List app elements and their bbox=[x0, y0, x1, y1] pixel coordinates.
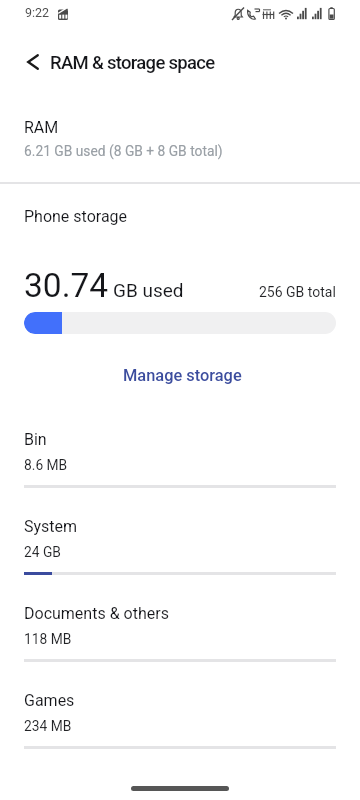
staticText: 234 MB bbox=[24, 718, 72, 734]
staticText: 256 GB total bbox=[259, 284, 336, 300]
staticText: 24 GB bbox=[24, 544, 61, 560]
staticText: Documents & others bbox=[24, 604, 169, 623]
staticText: Phone storage bbox=[24, 207, 128, 226]
staticText: 30.74 bbox=[24, 266, 109, 305]
staticText: 9:22 bbox=[25, 5, 50, 20]
button[interactable]: System bbox=[0, 506, 360, 593]
staticText: System bbox=[24, 517, 78, 536]
button[interactable]: RAM bbox=[0, 106, 360, 179]
staticText: RAM bbox=[24, 118, 59, 137]
button[interactable]: Manage storage bbox=[2, 356, 360, 394]
button[interactable]: Bin bbox=[0, 419, 360, 506]
staticText: GB used bbox=[113, 279, 184, 301]
staticText: Games bbox=[24, 691, 75, 710]
staticText: 118 MB bbox=[24, 631, 72, 647]
button[interactable]: Back bbox=[9, 38, 57, 86]
staticText: RAM & storage space bbox=[50, 52, 215, 74]
button[interactable]: Documents & others bbox=[0, 593, 360, 680]
button[interactable]: Games bbox=[0, 680, 360, 767]
staticText: Bin bbox=[24, 430, 47, 449]
staticText: 6.21 GB used (8 GB + 8 GB total) bbox=[24, 143, 223, 159]
staticText: Manage storage bbox=[123, 366, 242, 385]
staticText: 8.6 MB bbox=[24, 457, 68, 473]
